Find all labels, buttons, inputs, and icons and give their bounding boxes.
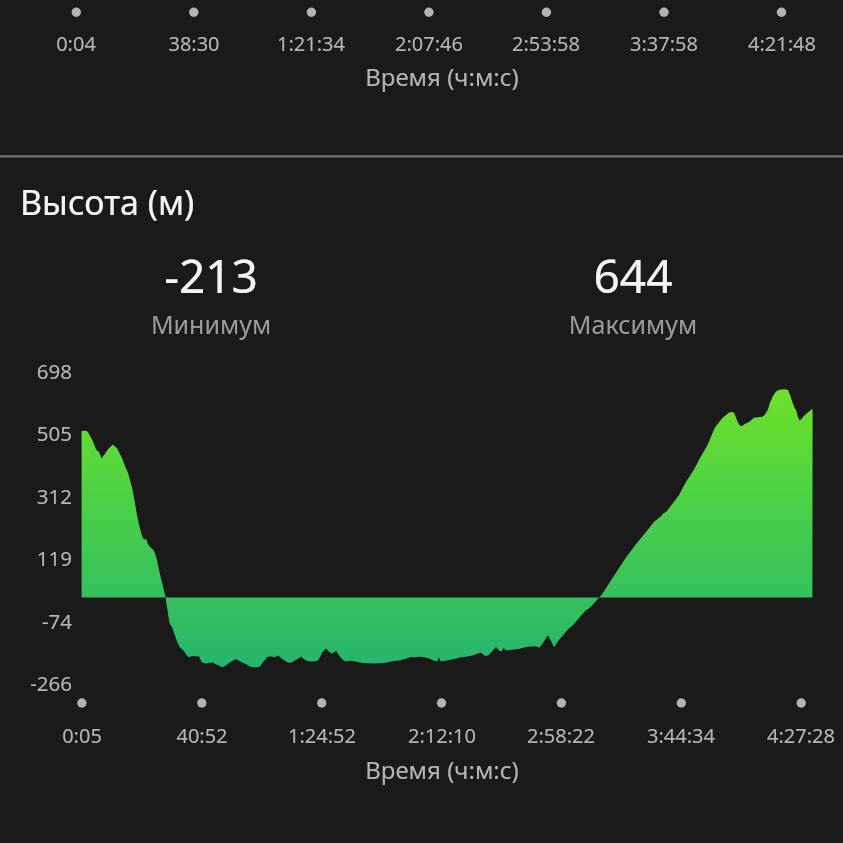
staticText: Минимум — [0, 307, 422, 341]
button[interactable]: График высоты — [81, 360, 813, 700]
staticText: Время (ч:м:с) — [232, 753, 652, 786]
staticText: 2:53:58 — [336, 30, 756, 57]
staticText: 4:27:28 — [591, 722, 843, 749]
button[interactable]: -213 — [0, 238, 422, 342]
staticText: 505 — [0, 419, 72, 447]
staticText: 2:58:22 — [351, 722, 771, 749]
staticText: 2:07:46 — [219, 30, 639, 57]
staticText: 2:12:10 — [232, 722, 652, 749]
staticText: Высота (м) — [20, 179, 195, 225]
staticText: Время (ч:м:с) — [232, 60, 652, 93]
staticText: 3:44:34 — [471, 722, 843, 749]
staticText: 38:30 — [0, 30, 404, 57]
staticText: 0:05 — [0, 722, 292, 749]
button[interactable]: 644 — [422, 238, 843, 342]
staticText: 40:52 — [0, 722, 412, 749]
staticText: 119 — [0, 544, 72, 572]
staticText: -213 — [0, 244, 422, 307]
staticText: 4:21:48 — [572, 30, 843, 57]
staticText: 3:37:58 — [454, 30, 843, 57]
staticText: 1:24:52 — [112, 722, 532, 749]
staticText: -266 — [0, 669, 72, 697]
staticText: 312 — [0, 482, 72, 510]
staticText: 644 — [422, 244, 843, 307]
staticText: -74 — [0, 607, 72, 635]
staticText: Максимум — [422, 307, 843, 341]
staticText: 1:21:34 — [101, 30, 521, 57]
staticText: 0:04 — [0, 30, 286, 57]
staticText: 698 — [0, 357, 72, 385]
